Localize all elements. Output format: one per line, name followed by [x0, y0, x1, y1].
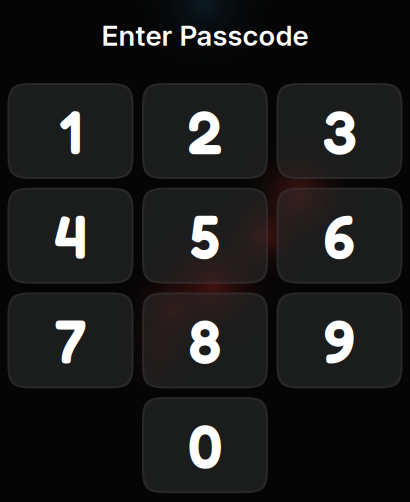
- button[interactable]: 9: [276, 292, 402, 388]
- button[interactable]: 5: [142, 188, 268, 284]
- staticText: Enter Passcode: [101, 19, 308, 52]
- button[interactable]: 0: [142, 397, 268, 493]
- staticText: 8: [188, 304, 221, 377]
- button[interactable]: 3: [276, 83, 402, 179]
- staticText: 9: [323, 304, 355, 377]
- staticText: 2: [187, 95, 222, 167]
- button[interactable]: 8: [142, 292, 268, 388]
- button[interactable]: 2: [142, 83, 268, 179]
- staticText: 5: [190, 199, 220, 272]
- staticText: 6: [323, 199, 355, 272]
- button[interactable]: 4: [7, 188, 133, 284]
- button[interactable]: 1: [7, 83, 133, 179]
- staticText: 0: [188, 409, 222, 481]
- staticText: 3: [322, 95, 356, 167]
- staticText: 7: [54, 304, 86, 377]
- staticText: 4: [54, 199, 87, 272]
- button[interactable]: 6: [276, 188, 402, 284]
- button[interactable]: 7: [7, 292, 133, 388]
- staticText: 1: [59, 95, 82, 167]
